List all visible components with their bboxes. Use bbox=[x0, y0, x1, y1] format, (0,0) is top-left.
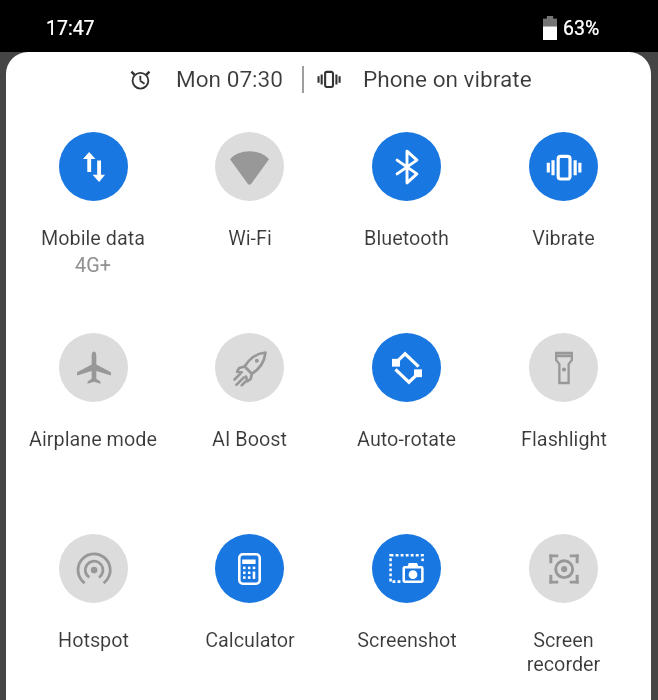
staticText: Calculator bbox=[205, 629, 295, 652]
button[interactable]: Flashlight bbox=[485, 307, 642, 451]
staticText: Screenshot bbox=[357, 629, 457, 652]
staticText: 4G+ bbox=[75, 254, 111, 277]
button[interactable]: Screenshot bbox=[328, 508, 485, 652]
staticText: Flashlight bbox=[521, 428, 607, 451]
other: Auto-rotate bbox=[372, 333, 441, 402]
button[interactable]: Airplane mode bbox=[15, 307, 171, 451]
other: Airplane mode bbox=[59, 333, 128, 402]
button[interactable]: Wi-Fi bbox=[171, 106, 328, 250]
staticText: Wi-Fi bbox=[228, 227, 272, 250]
button[interactable]: AI Boost bbox=[171, 307, 328, 451]
button[interactable]: Screen recorder bbox=[485, 508, 642, 676]
button[interactable]: Phone on vibrate bbox=[317, 66, 532, 92]
staticText: Mobile data bbox=[41, 227, 145, 250]
button[interactable]: Bluetooth bbox=[328, 106, 485, 250]
other: Screen recorder bbox=[529, 534, 598, 603]
other: AI Boost bbox=[215, 333, 284, 402]
button[interactable]: Auto-rotate bbox=[328, 307, 485, 451]
staticText: 63% bbox=[563, 17, 600, 40]
staticText: 17:47 bbox=[46, 17, 95, 40]
staticText: Vibrate bbox=[532, 227, 595, 250]
other: Mobile data bbox=[59, 132, 128, 201]
button[interactable]: Mobile data bbox=[15, 106, 171, 277]
other: Bluetooth bbox=[372, 132, 441, 201]
button[interactable]: Mon 07:30 bbox=[131, 66, 283, 92]
other: Wi-Fi bbox=[215, 132, 284, 201]
button[interactable]: Hotspot bbox=[15, 508, 171, 652]
staticText: Phone on vibrate bbox=[363, 66, 532, 92]
other: Flashlight bbox=[529, 333, 598, 402]
staticText: AI Boost bbox=[212, 428, 287, 451]
staticText: Auto-rotate bbox=[357, 428, 456, 451]
other: Vibrate bbox=[529, 132, 598, 201]
other: Calculator bbox=[215, 534, 284, 603]
staticText: Mon 07:30 bbox=[176, 66, 283, 92]
other: Hotspot bbox=[59, 534, 128, 603]
other: Screenshot bbox=[372, 534, 441, 603]
staticText: Airplane mode bbox=[29, 428, 157, 451]
button[interactable]: Calculator bbox=[171, 508, 328, 652]
staticText: Screen recorder bbox=[497, 629, 630, 676]
staticText: Bluetooth bbox=[364, 227, 449, 250]
staticText: Hotspot bbox=[58, 629, 129, 652]
button[interactable]: Vibrate bbox=[485, 106, 642, 250]
